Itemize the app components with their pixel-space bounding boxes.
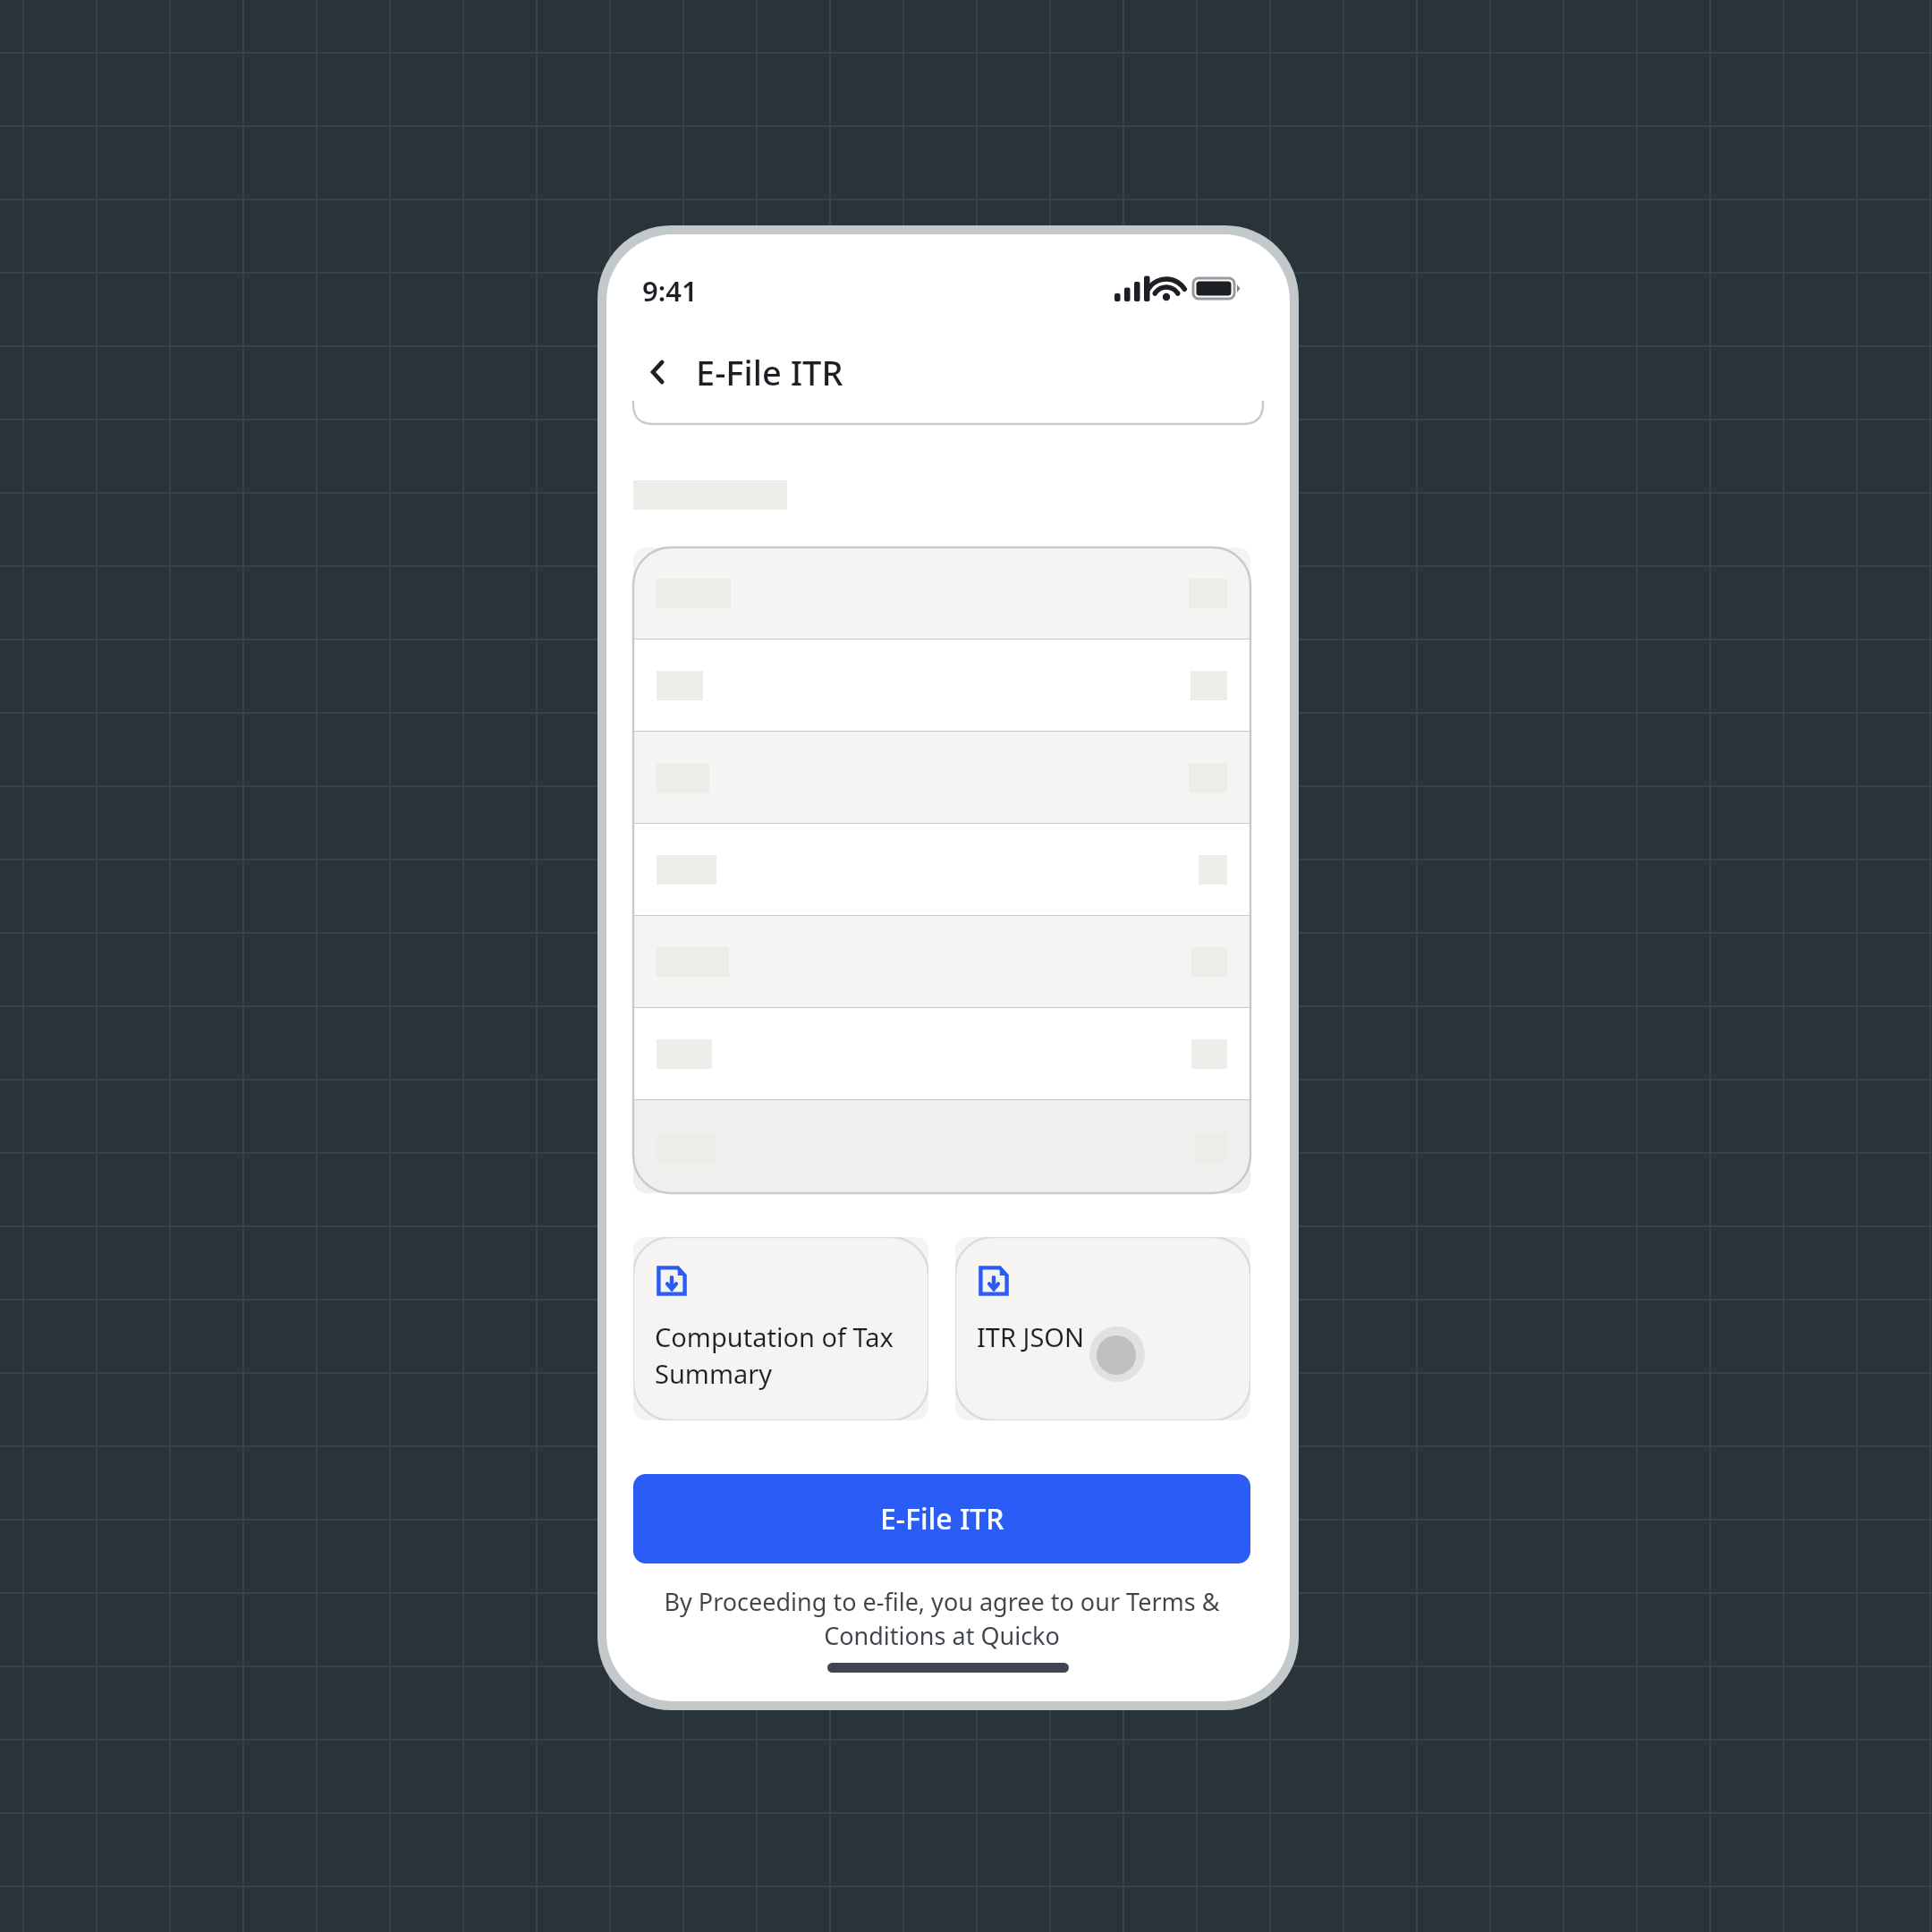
button[interactable] (633, 732, 1250, 824)
button[interactable]: E-File ITR (633, 1474, 1250, 1563)
button[interactable]: Back (633, 347, 683, 397)
button[interactable] (633, 640, 1250, 732)
button[interactable] (633, 916, 1250, 1008)
button[interactable]: Computation of Tax Summary (633, 1237, 928, 1420)
staticText: Computation of Tax Summary (655, 1319, 894, 1392)
button[interactable] (633, 1100, 1250, 1193)
button[interactable]: ITR JSON (955, 1237, 1250, 1420)
staticText: E-File ITR (696, 349, 843, 395)
button[interactable] (633, 1008, 1250, 1100)
staticText: ITR JSON (977, 1319, 1085, 1354)
staticText: By Proceeding to e-file, you agree to ou… (660, 1585, 1224, 1652)
button[interactable] (633, 824, 1250, 916)
staticText: 9:41 (642, 272, 698, 309)
button[interactable] (633, 547, 1250, 640)
staticText: E-File ITR (880, 1499, 1004, 1538)
